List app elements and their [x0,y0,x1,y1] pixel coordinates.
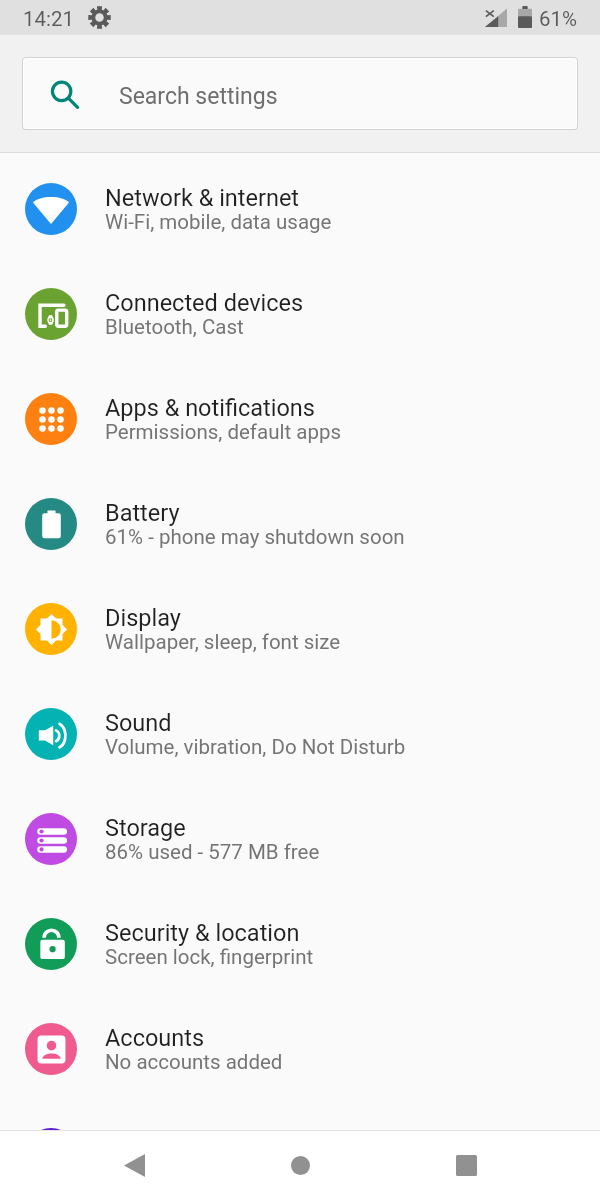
staticText: Battery [105,499,180,527]
button[interactable]: Search settings [24,59,576,128]
staticText: Apps & notifications [105,394,315,422]
button[interactable]: Apps & notifications [0,366,600,471]
staticText: Wi-Fi, mobile, data usage [105,210,332,234]
staticText: 86% used - 577 MB free [105,840,320,864]
staticText: Wallpaper, sleep, font size [105,630,341,654]
button[interactable]: Storage [0,786,600,891]
staticText: Permissions, default apps [105,420,341,444]
button[interactable]: Battery [0,471,600,576]
button[interactable]: Sound [0,681,600,786]
staticText: Display [105,604,181,632]
button[interactable]: Back [89,1131,179,1200]
staticText: 61% [539,7,578,31]
button[interactable]: Security & location [0,891,600,996]
button[interactable]: Home [255,1131,345,1200]
staticText: Volume, vibration, Do Not Disturb [105,735,406,759]
staticText: Storage [105,814,186,842]
button[interactable]: Display [0,576,600,681]
button[interactable]: Network & internet [0,156,600,261]
staticText: Sound [105,709,172,737]
button[interactable]: Recent apps [421,1131,511,1200]
staticText: 14:21 [23,7,75,31]
button[interactable]: Accessibility [0,1101,600,1130]
staticText: Security & location [105,919,300,947]
staticText: Bluetooth, Cast [105,315,244,339]
staticText: Screen lock, fingerprint [105,945,314,969]
staticText: No accounts added [105,1050,283,1074]
staticText: Search settings [119,83,278,110]
button[interactable]: Connected devices [0,261,600,366]
other: Settings [88,6,111,29]
staticText: 61% - phone may shutdown soon [105,525,405,549]
staticText: Connected devices [105,289,304,317]
staticText: Accounts [105,1024,205,1052]
button[interactable]: Accounts [0,996,600,1101]
staticText: Network & internet [105,184,300,212]
